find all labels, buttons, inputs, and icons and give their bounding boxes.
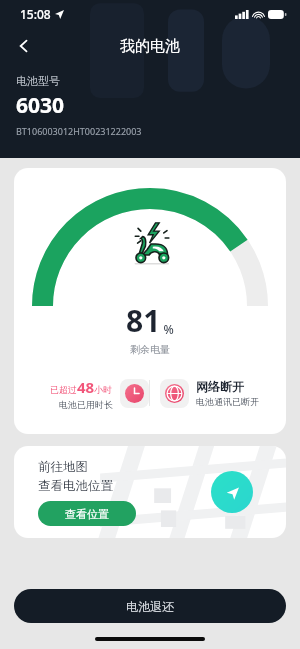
staticText: 15:08 (20, 6, 51, 22)
staticText: 电池通讯已断开 (196, 396, 259, 407)
staticText: 6030 (16, 91, 65, 120)
staticText: 电池退还 (126, 599, 174, 614)
staticText: 我的电池 (120, 37, 180, 56)
staticText: 前往地图 (38, 459, 88, 475)
staticText: 已超过48小时 (50, 377, 113, 397)
staticText: BT106003012HT00231222003 (16, 125, 142, 137)
button[interactable]: Back (8, 30, 40, 62)
button[interactable]: 已超过48小时 (14, 372, 149, 414)
button[interactable]: 网络断开 (150, 372, 286, 414)
staticText: 电池已用时长 (59, 399, 113, 410)
button[interactable]: 查看位置 (38, 501, 136, 526)
button[interactable]: 电池退还 (14, 589, 286, 623)
button[interactable]: 前往地图 (14, 446, 286, 538)
staticText: 查看电池位置 (38, 478, 113, 494)
button[interactable]: Locate battery (211, 471, 253, 513)
staticText: 电池型号 (16, 74, 60, 88)
staticText: 网络断开 (196, 379, 244, 394)
staticText: 81 % (126, 300, 174, 341)
staticText: 剩余电量 (130, 343, 170, 356)
staticText: 查看位置 (65, 507, 109, 521)
